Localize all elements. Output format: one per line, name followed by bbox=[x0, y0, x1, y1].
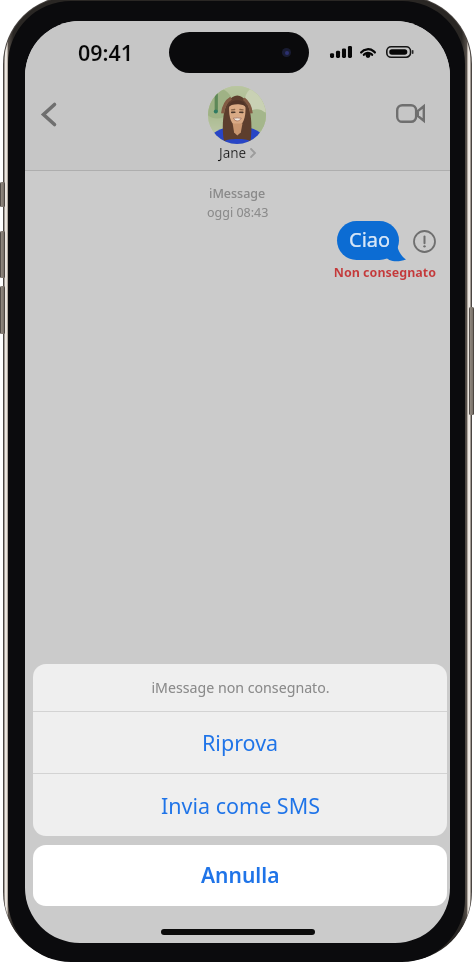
staticText: oggi 08:43 bbox=[207, 204, 269, 221]
staticText: Riprova bbox=[202, 728, 279, 757]
button[interactable]: Annulla bbox=[33, 845, 447, 906]
button[interactable]: Invia come SMS bbox=[33, 774, 447, 836]
staticText: Ciao bbox=[349, 226, 391, 253]
button[interactable]: Non consegnato bbox=[412, 229, 437, 254]
staticText: iMessage non consegnato. bbox=[151, 678, 330, 697]
staticText: iMessage bbox=[209, 185, 266, 202]
button[interactable]: Indietro bbox=[27, 92, 71, 136]
staticText: 09:41 bbox=[78, 38, 134, 67]
button[interactable]: Riprova bbox=[33, 712, 447, 773]
staticText: Annulla bbox=[201, 861, 280, 890]
staticText: Invia come SMS bbox=[161, 791, 320, 820]
button[interactable]: Jane bbox=[208, 86, 266, 162]
staticText: Jane bbox=[219, 144, 247, 162]
staticText: Non consegnato bbox=[297, 264, 436, 281]
button[interactable]: FaceTime bbox=[388, 91, 432, 135]
